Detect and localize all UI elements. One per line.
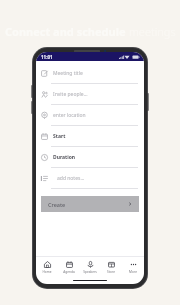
button[interactable]: Create	[41, 196, 139, 212]
staticText: Duration	[53, 154, 76, 161]
staticText: add notes...	[57, 175, 85, 182]
staticText: Agenda	[63, 270, 75, 274]
button[interactable]: Invite people...	[36, 84, 144, 105]
staticText: Meeting title	[53, 70, 83, 77]
button[interactable]: Speakers	[80, 257, 100, 277]
button[interactable]: enter location	[36, 105, 144, 126]
button[interactable]: More	[123, 257, 143, 277]
staticText: More	[129, 270, 137, 274]
button[interactable]: Store	[101, 257, 121, 277]
staticText: Create	[48, 201, 66, 208]
staticText: Start	[53, 133, 66, 140]
staticText: Store	[107, 270, 115, 274]
button[interactable]: Home	[37, 257, 57, 277]
button[interactable]: Start	[36, 126, 144, 147]
staticText: Speakers	[83, 270, 97, 274]
button[interactable]: Duration	[36, 147, 144, 168]
staticText: Invite people...	[53, 91, 88, 98]
staticText: Home	[42, 270, 52, 274]
button[interactable]: Agenda	[59, 257, 79, 277]
staticText: 11:01	[41, 54, 53, 60]
button[interactable]: Meeting title	[36, 63, 144, 84]
staticText: enter location	[53, 112, 86, 119]
staticText: Connect and schedule	[5, 24, 129, 39]
button[interactable]: add notes...	[36, 168, 144, 189]
